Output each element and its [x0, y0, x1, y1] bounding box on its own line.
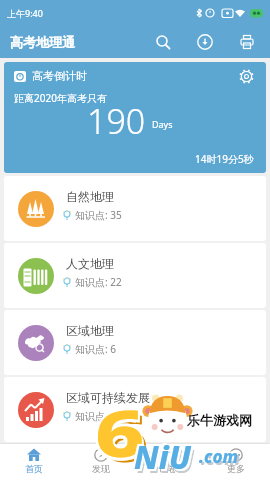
staticText: 发现 [92, 463, 110, 474]
staticText: 190 [87, 98, 146, 144]
staticText: 首页 [25, 463, 43, 474]
staticText: 高考倒计时 [32, 69, 87, 83]
staticText: .com [197, 443, 237, 466]
staticText: 高考地理通 [10, 34, 75, 50]
staticText: 知识点: 22 [75, 275, 122, 289]
staticText: 人文地理 [66, 256, 114, 271]
button[interactable]: 高考倒计时 [4, 62, 266, 173]
staticText: NiU [132, 433, 189, 477]
button[interactable]: 区域地理 [4, 310, 266, 375]
button[interactable]: 首页 [0, 444, 67, 480]
staticText: NiU [134, 435, 191, 479]
staticText: 6 [95, 385, 145, 474]
staticText: 6 [97, 391, 147, 480]
button[interactable]: 更多 [202, 444, 270, 480]
staticText: 上午9:40 [7, 7, 43, 19]
staticText: 知识点: 12 [75, 409, 122, 423]
button[interactable] [148, 27, 178, 57]
staticText: 6 [99, 393, 149, 480]
staticText: 区域可持续发展 [66, 390, 150, 405]
staticText: 试卷 [159, 463, 177, 474]
button[interactable]: 发现 [67, 444, 134, 480]
staticText: NiU [137, 439, 194, 480]
staticText: 区域地理 [66, 323, 114, 338]
button[interactable] [232, 27, 262, 57]
staticText: 6 [93, 391, 143, 480]
button[interactable]: 试卷 [134, 444, 202, 480]
button[interactable]: 人文地理 [4, 243, 266, 308]
button[interactable]: 自然地理 [4, 176, 266, 241]
button[interactable] [190, 27, 220, 57]
staticText: .com [201, 447, 241, 470]
button[interactable]: 区域可持续发展 [4, 377, 266, 442]
staticText: 6 [93, 387, 143, 476]
staticText: 距离2020年高考只有 [14, 91, 107, 105]
staticText: 更多 [227, 463, 245, 474]
staticText: 乐牛游戏网 [187, 412, 252, 428]
staticText: 知识点: 6 [75, 342, 116, 356]
staticText: 知识点: 35 [75, 208, 122, 222]
staticText: .com [199, 445, 239, 468]
staticText: Days [152, 118, 173, 130]
staticText: 自然地理 [66, 189, 114, 204]
staticText: 14时19分5秒 [195, 152, 254, 166]
staticText: NiU [136, 437, 193, 480]
staticText: 6 [95, 388, 145, 477]
